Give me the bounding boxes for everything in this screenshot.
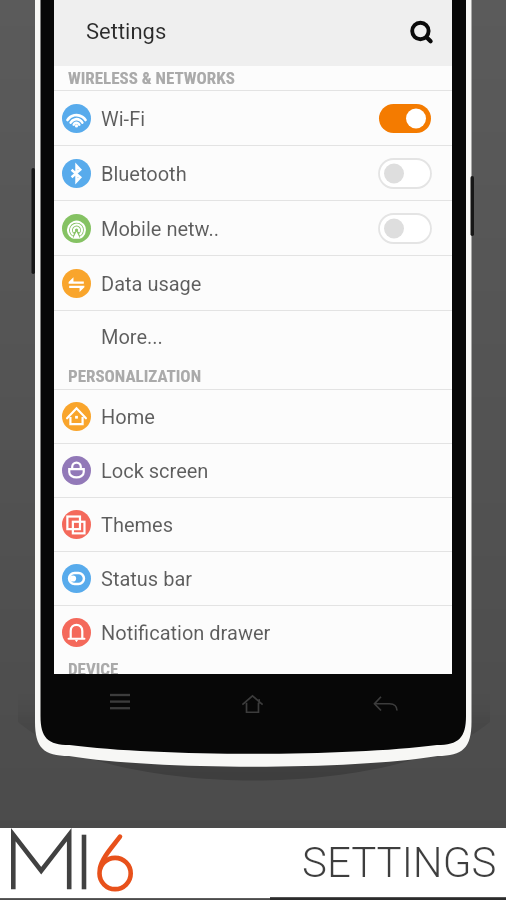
staticText: Themes	[101, 513, 174, 536]
button[interactable]: Wi-Fi	[54, 91, 452, 145]
button[interactable]: Search	[398, 11, 442, 55]
button[interactable]: Recent apps	[54, 674, 186, 736]
staticText: WIRELESS & NETWORKS	[68, 68, 235, 88]
button[interactable]: Home	[186, 674, 319, 736]
button[interactable]: Status bar	[54, 552, 452, 605]
staticText: Bluetooth	[101, 162, 187, 185]
staticText: SETTINGS	[302, 838, 497, 887]
staticText: Notification drawer	[101, 621, 271, 644]
staticText: Lock screen	[101, 459, 209, 482]
button[interactable]	[379, 159, 431, 188]
staticText: Settings	[86, 19, 167, 45]
staticText: Home	[101, 405, 155, 428]
button[interactable]: Notification drawer	[54, 606, 452, 659]
button[interactable]: Home	[54, 390, 452, 443]
button[interactable]: Mobile netw..	[54, 201, 452, 255]
button[interactable]	[379, 104, 431, 133]
button[interactable]	[379, 214, 431, 243]
button[interactable]: Data usage	[54, 256, 452, 310]
staticText: Wi-Fi	[101, 107, 146, 130]
staticText: Status bar	[101, 567, 193, 590]
staticText: More...	[101, 325, 163, 348]
button[interactable]: Lock screen	[54, 444, 452, 497]
button[interactable]: Back	[319, 674, 452, 736]
button[interactable]: Bluetooth	[54, 146, 452, 200]
button[interactable]: Themes	[54, 498, 452, 551]
staticText: Data usage	[101, 272, 202, 295]
button[interactable]: More...	[54, 311, 452, 362]
staticText: Mobile netw..	[101, 217, 219, 240]
staticText: DEVICE	[68, 659, 119, 674]
staticText: PERSONALIZATION	[68, 366, 202, 386]
